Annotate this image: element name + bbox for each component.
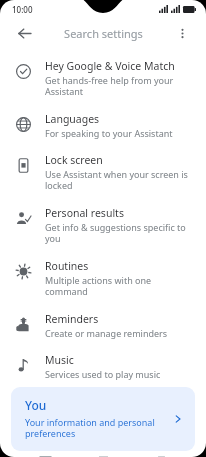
button[interactable]: Back xyxy=(9,18,39,48)
staticText: Get info & suggestions specific to you xyxy=(45,221,192,245)
button[interactable]: Reminders xyxy=(0,305,206,346)
button[interactable]: Personal results xyxy=(0,199,206,252)
staticText: 10:00 xyxy=(12,4,33,15)
staticText: Use Assistant when your screen is locked xyxy=(45,168,192,192)
staticText: Hey Google & Voice Match xyxy=(45,59,175,73)
button[interactable]: Hey Google & Voice Match xyxy=(0,52,206,105)
button[interactable]: Lock screen xyxy=(0,146,206,199)
staticText: Personal results xyxy=(45,206,124,220)
staticText: Services used to play music xyxy=(45,368,161,380)
staticText: Reminders xyxy=(45,312,99,326)
staticText: For speaking to your Assistant xyxy=(45,127,173,139)
staticText: Languages xyxy=(45,112,100,126)
staticText: Lock screen xyxy=(45,153,103,167)
button[interactable]: Routines xyxy=(0,252,206,305)
button[interactable]: You xyxy=(11,387,195,451)
staticText: Create or manage reminders xyxy=(45,327,168,339)
staticText: Music xyxy=(45,353,74,367)
staticText: Search settings xyxy=(64,26,143,41)
button[interactable]: Languages xyxy=(0,105,206,146)
staticText: Multiple actions with one command xyxy=(45,274,192,298)
button[interactable]: More options xyxy=(167,18,197,48)
staticText: Routines xyxy=(45,259,89,273)
staticText: You xyxy=(25,397,47,413)
staticText: Get hands-free help from your Assistant xyxy=(45,74,192,98)
staticText: Your information and personal preference… xyxy=(25,416,167,440)
button[interactable]: Music xyxy=(0,346,206,387)
